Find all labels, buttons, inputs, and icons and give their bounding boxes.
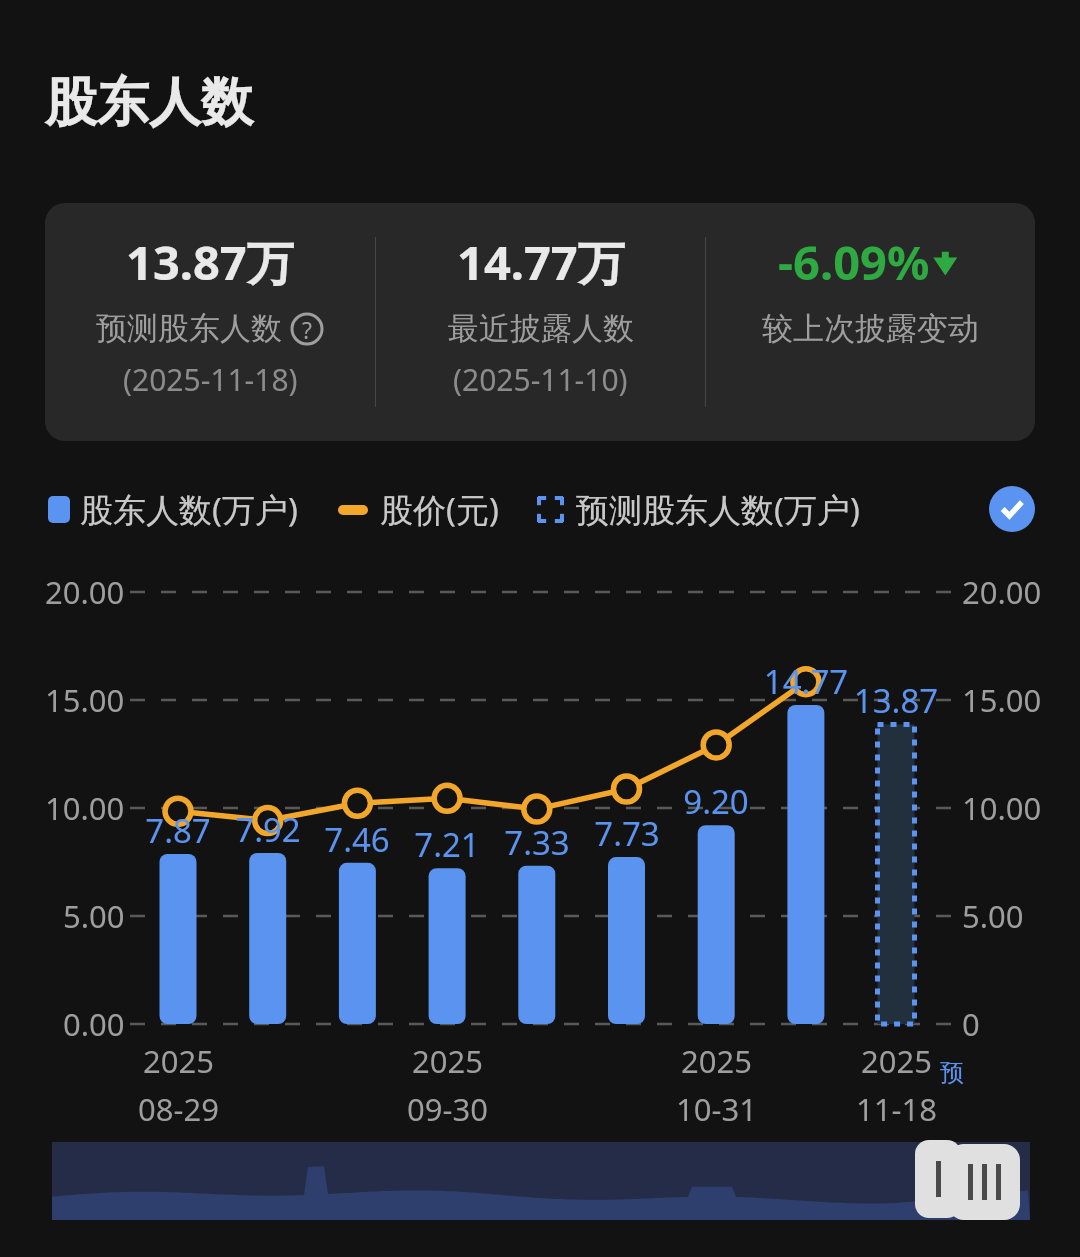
staticText: 9.20 xyxy=(672,779,760,824)
staticText: 20.00 xyxy=(962,571,1042,613)
staticText: 11-18 xyxy=(856,1088,937,1130)
button[interactable]: 已选中预测 xyxy=(989,486,1035,532)
button[interactable]: 股价(元) xyxy=(338,487,499,532)
staticText: 股价(元) xyxy=(380,487,499,532)
staticText: 10.00 xyxy=(45,787,125,829)
button[interactable]: 范围右端 xyxy=(948,1144,1020,1220)
staticText: 15.00 xyxy=(962,679,1042,721)
staticText: 较上次披露变动 xyxy=(762,309,979,348)
staticText: 5.00 xyxy=(962,895,1024,937)
staticText: 7.33 xyxy=(493,820,581,865)
staticText: 预测股东人数(万户) xyxy=(576,487,860,532)
staticText: ? xyxy=(302,314,312,345)
button[interactable]: 股东人数(万户) xyxy=(48,487,298,532)
staticText: 2025 xyxy=(861,1040,932,1082)
staticText: -6.09% xyxy=(778,230,930,294)
button[interactable]: 预测股东人数(万户) xyxy=(537,487,860,532)
staticText: 10-31 xyxy=(676,1088,757,1130)
staticText: 13.87万 xyxy=(126,230,294,294)
staticText: 2025 xyxy=(681,1040,752,1082)
staticText: 09-30 xyxy=(407,1088,488,1130)
staticText: 15.00 xyxy=(45,679,125,721)
staticText: 7.21 xyxy=(403,822,491,867)
button[interactable]: 帮助说明 xyxy=(290,312,324,346)
staticText: 08-29 xyxy=(138,1088,219,1130)
staticText: 10.00 xyxy=(962,787,1042,829)
staticText: 7.73 xyxy=(583,811,671,856)
staticText: 14.77 xyxy=(762,659,850,704)
staticText: 2025 xyxy=(143,1040,214,1082)
staticText: 预测股东人数 xyxy=(96,309,282,348)
staticText: 0.00 xyxy=(63,1003,125,1045)
button[interactable]: 14.77万 xyxy=(376,203,705,441)
staticText: 7.87 xyxy=(134,808,222,853)
staticText: 7.46 xyxy=(313,817,401,862)
staticText: 14.77万 xyxy=(457,230,625,294)
staticText: (2025-11-18) xyxy=(123,359,298,400)
staticText: 7.92 xyxy=(224,807,312,852)
staticText: 股东人数 xyxy=(45,70,253,136)
staticText: 预 xyxy=(940,1058,964,1088)
button[interactable]: 13.87万 xyxy=(45,203,375,441)
staticText: (2025-11-10) xyxy=(453,359,628,400)
staticText: 2025 xyxy=(412,1040,483,1082)
staticText: 5.00 xyxy=(63,895,125,937)
staticText: 最近披露人数 xyxy=(448,309,634,348)
staticText: 0 xyxy=(962,1003,980,1045)
staticText: 股东人数(万户) xyxy=(80,487,298,532)
staticText: 20.00 xyxy=(45,571,125,613)
staticText: 13.87 xyxy=(852,678,940,723)
button[interactable]: 范围左端 xyxy=(915,1140,961,1218)
button[interactable]: -6.09% xyxy=(706,203,1035,441)
